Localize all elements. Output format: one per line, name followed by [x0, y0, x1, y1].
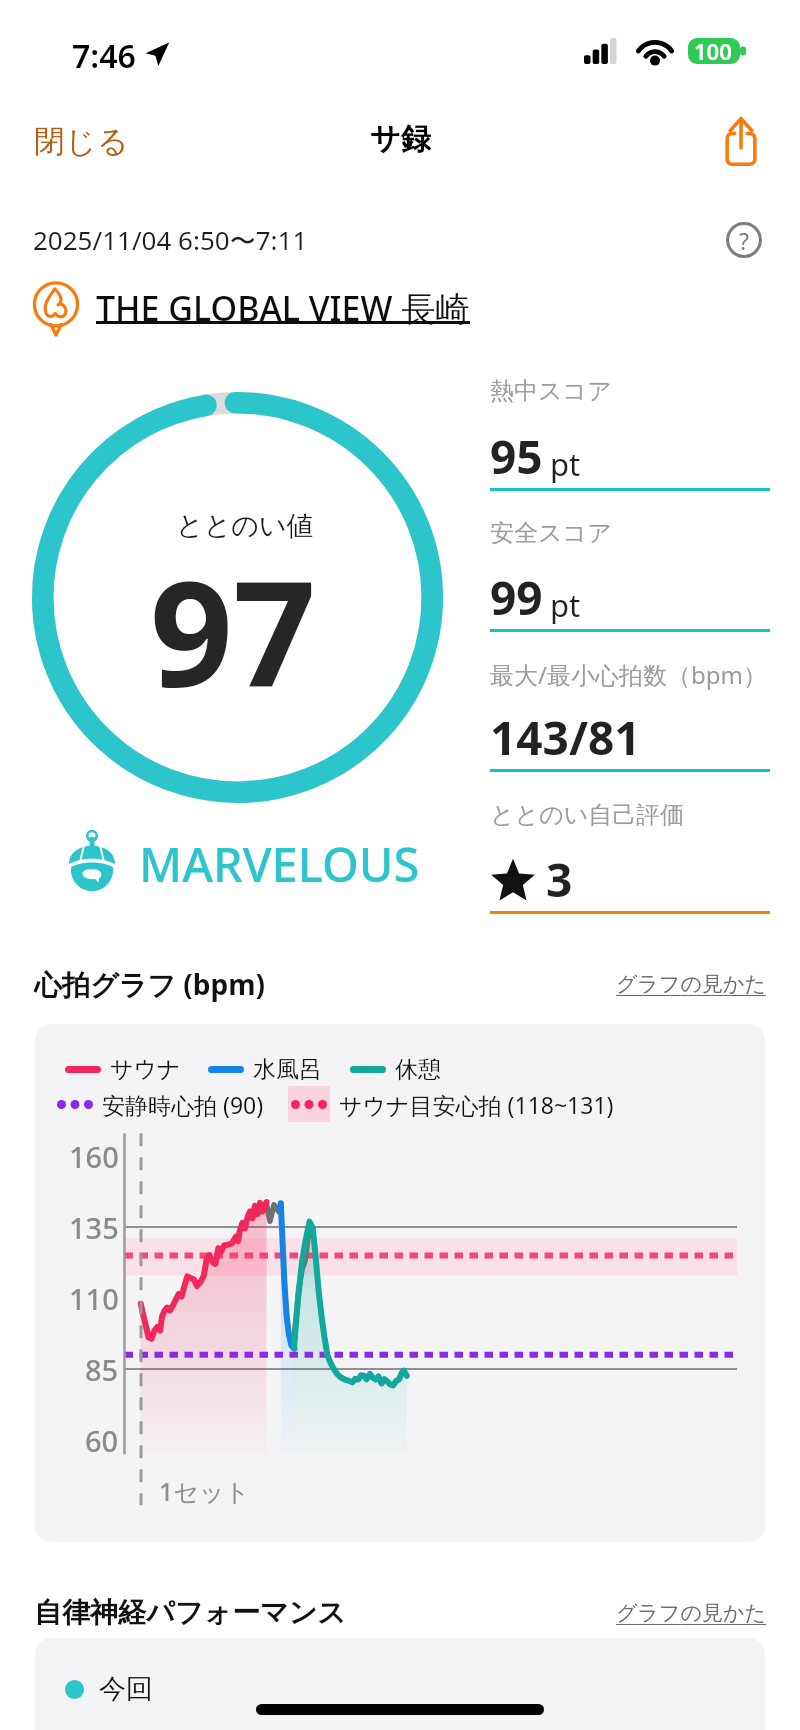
- staticText: pt: [550, 584, 581, 626]
- staticText: 安静時心拍 (90): [102, 1089, 264, 1120]
- staticText: 自律神経パフォーマンス: [34, 1595, 346, 1630]
- staticText: サウナ目安心拍 (118~131): [339, 1089, 614, 1120]
- staticText: 143/81: [490, 706, 641, 769]
- staticText: 60: [85, 1421, 119, 1460]
- staticText: ととのい自己評価: [490, 800, 685, 830]
- button[interactable]: 閉じる: [14, 112, 149, 171]
- staticText: 7:46: [72, 34, 136, 78]
- staticText: MARVELOUS: [139, 832, 420, 896]
- staticText: 100: [694, 36, 732, 66]
- staticText: 97: [150, 532, 316, 729]
- staticText: ?: [739, 225, 749, 256]
- staticText: 今回: [99, 1672, 153, 1706]
- staticText: 閉じる: [34, 122, 129, 161]
- button[interactable]: グラフの見かた: [616, 971, 766, 997]
- staticText: 85: [85, 1350, 119, 1389]
- button[interactable]: グラフの見かた: [616, 1600, 766, 1626]
- staticText: 心拍グラフ (bpm): [34, 965, 265, 1003]
- staticText: 水風呂: [253, 1055, 322, 1084]
- staticText: pt: [550, 443, 581, 485]
- staticText: THE GLOBAL VIEW 長崎: [96, 285, 470, 331]
- staticText: サ録: [370, 120, 431, 158]
- staticText: 3: [546, 848, 573, 911]
- staticText: ととのい値: [176, 509, 314, 543]
- staticText: 最大/最小心拍数（bpm）: [490, 658, 767, 691]
- staticText: グラフの見かた: [616, 971, 766, 997]
- staticText: グラフの見かた: [616, 1600, 766, 1626]
- button[interactable]: Help: [718, 214, 770, 266]
- staticText: 95: [490, 425, 543, 488]
- staticText: 熱中スコア: [490, 376, 612, 406]
- staticText: 110: [69, 1279, 119, 1318]
- staticText: サウナ: [110, 1055, 181, 1084]
- staticText: 135: [69, 1208, 119, 1247]
- staticText: 1セット: [159, 1474, 251, 1508]
- button[interactable]: THE GLOBAL VIEW 長崎: [26, 278, 470, 338]
- button[interactable]: Share: [708, 108, 774, 174]
- staticText: 99: [490, 566, 543, 629]
- staticText: 休憩: [395, 1055, 441, 1084]
- staticText: 160: [69, 1137, 119, 1176]
- staticText: 安全スコア: [490, 518, 612, 548]
- staticText: 2025/11/04 6:50〜7:11: [33, 222, 308, 258]
